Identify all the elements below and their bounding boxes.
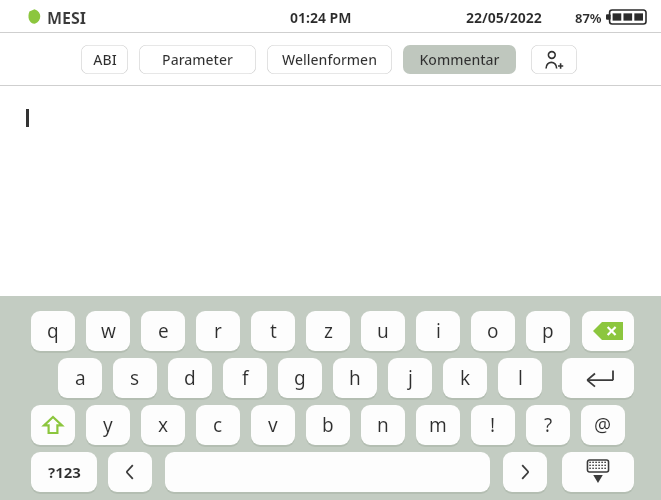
button[interactable]: z [306, 311, 350, 351]
button[interactable]: b [306, 405, 350, 445]
staticText: h [349, 365, 361, 391]
button[interactable]: p [526, 311, 570, 351]
button[interactable]: Space [165, 452, 490, 492]
button[interactable]: a [58, 358, 102, 398]
staticText: @ [594, 412, 612, 438]
staticText: 87% [575, 9, 602, 27]
button[interactable]: h [333, 358, 377, 398]
button[interactable]: l [498, 358, 542, 398]
button[interactable]: i [416, 311, 460, 351]
staticText: v [268, 412, 278, 438]
staticText: ABI [93, 50, 117, 69]
staticText: ! [490, 412, 496, 438]
button[interactable]: Wellenformen [267, 45, 392, 74]
button[interactable]: u [361, 311, 405, 351]
staticText: e [158, 318, 169, 344]
staticText: g [294, 365, 306, 391]
button[interactable]: Hide keyboard [562, 452, 634, 492]
button[interactable]: o [471, 311, 515, 351]
button[interactable]: k [443, 358, 487, 398]
staticText: k [460, 365, 471, 391]
button[interactable]: c [196, 405, 240, 445]
staticText: c [213, 412, 223, 438]
button[interactable]: j [388, 358, 432, 398]
button[interactable]: ! [471, 405, 515, 445]
button[interactable]: ? [526, 405, 570, 445]
button[interactable]: t [251, 311, 295, 351]
staticText: o [487, 318, 499, 344]
staticText: j [408, 365, 413, 391]
staticText: m [429, 412, 447, 438]
button[interactable]: e [141, 311, 185, 351]
staticText: f [242, 365, 249, 391]
staticText: MESI [47, 7, 87, 29]
button[interactable]: s [113, 358, 157, 398]
button[interactable]: g [278, 358, 322, 398]
button[interactable]: Enter [562, 358, 634, 398]
other: Battery 87 percent [606, 10, 646, 24]
staticText: u [377, 318, 389, 344]
button[interactable]: q [31, 311, 75, 351]
staticText: 22/05/2022 [466, 8, 542, 27]
staticText: 01:24 PM [290, 8, 352, 27]
staticText: t [270, 318, 277, 344]
staticText: r [214, 318, 222, 344]
staticText: ? [544, 412, 553, 438]
button[interactable]: Next [503, 452, 547, 492]
button[interactable]: x [141, 405, 185, 445]
staticText: i [436, 318, 441, 344]
button[interactable]: m [416, 405, 460, 445]
button[interactable]: y [86, 405, 130, 445]
staticText: z [324, 318, 333, 344]
button[interactable]: w [86, 311, 130, 351]
staticText: x [158, 412, 169, 438]
button[interactable]: n [361, 405, 405, 445]
staticText: n [377, 412, 389, 438]
staticText: s [130, 365, 140, 391]
staticText: y [103, 412, 113, 438]
staticText: d [184, 365, 196, 391]
button[interactable]: r [196, 311, 240, 351]
button[interactable]: ABI [81, 45, 128, 74]
button[interactable]: f [223, 358, 267, 398]
staticText: Kommentar [419, 50, 500, 69]
button[interactable]: Parameter [139, 45, 256, 74]
staticText: Parameter [162, 50, 233, 69]
button[interactable]: @ [581, 405, 625, 445]
staticText: w [101, 318, 116, 344]
button[interactable]: Previous [108, 452, 152, 492]
staticText: b [322, 412, 334, 438]
staticText: a [75, 365, 86, 391]
button[interactable]: Shift [31, 405, 75, 445]
staticText: l [518, 365, 523, 391]
staticText: Wellenformen [282, 50, 377, 69]
staticText: p [542, 318, 554, 344]
button[interactable]: v [251, 405, 295, 445]
staticText: q [47, 318, 59, 344]
staticText: ?123 [48, 462, 81, 482]
button[interactable]: Backspace [582, 311, 634, 351]
button[interactable]: ?123 [31, 452, 97, 492]
button[interactable]: Kommentar [403, 45, 516, 74]
button[interactable]: Add patient [531, 45, 577, 74]
button[interactable]: d [168, 358, 212, 398]
